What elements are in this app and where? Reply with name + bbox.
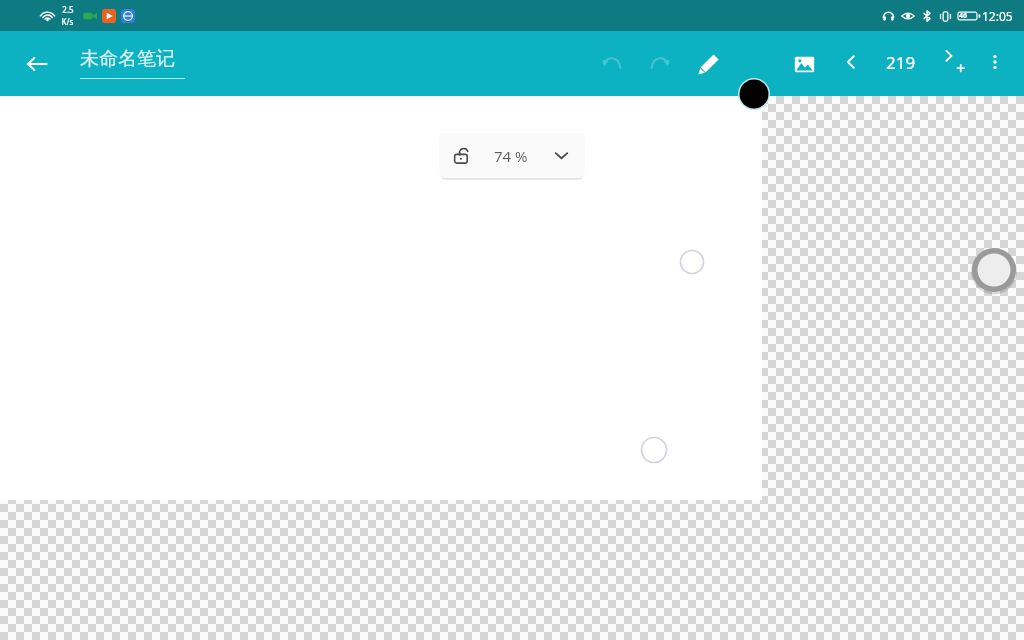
staticText: K/s (61, 16, 74, 27)
button[interactable]: Redo (641, 46, 677, 82)
button[interactable]: 74 % (439, 133, 585, 178)
button[interactable]: More options (978, 45, 1012, 79)
button[interactable]: Back (18, 45, 56, 83)
button[interactable]: Resize handle (971, 247, 1017, 293)
button[interactable]: Undo (594, 46, 630, 82)
staticText: 2.5 (62, 4, 74, 15)
button[interactable]: Add page (938, 45, 972, 79)
staticText: 219 (886, 51, 916, 74)
button[interactable]: Colour (736, 76, 772, 112)
staticText: 74 % (494, 146, 528, 166)
button[interactable]: 219 (875, 45, 927, 79)
button[interactable]: 未命名笔记 (80, 45, 185, 85)
staticText: 46 (959, 11, 968, 21)
staticText: 未命名笔记 (80, 47, 175, 71)
staticText: 12:05 (982, 8, 1013, 24)
button[interactable]: Insert image (786, 46, 822, 82)
button[interactable]: Pen (690, 46, 726, 82)
button[interactable]: Previous page (834, 45, 868, 79)
